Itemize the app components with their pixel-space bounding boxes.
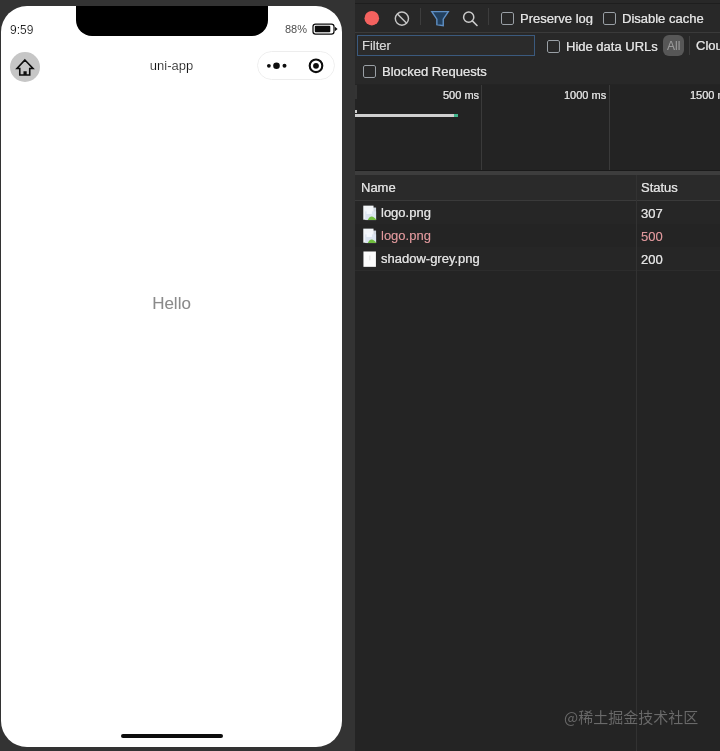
staticText: 1000 ms	[564, 89, 607, 101]
staticText: 9:59	[10, 23, 34, 36]
staticText: Clou	[696, 38, 720, 53]
staticText: logo.png	[381, 228, 431, 243]
button[interactable]: Filter	[425, 6, 452, 31]
staticText: shadow-grey.png	[381, 251, 480, 266]
button[interactable]: logo.png	[355, 201, 720, 224]
staticText: Disable cache	[622, 11, 704, 25]
staticText: 88%	[285, 23, 308, 35]
button[interactable]: Filter	[357, 35, 535, 56]
staticText: Hello	[1, 294, 342, 313]
button[interactable]: Menu	[257, 51, 335, 80]
button[interactable]: Hide data URLs	[547, 39, 658, 53]
button[interactable]: Home	[10, 52, 40, 82]
staticText: All	[667, 39, 681, 52]
staticText: Preserve log	[520, 11, 593, 25]
button[interactable]: Blocked Requests	[363, 64, 487, 78]
button[interactable]: shadow-grey.png	[355, 247, 720, 270]
staticText: 500 ms	[443, 89, 480, 101]
staticText: Status	[641, 180, 678, 195]
button[interactable]: All	[663, 35, 684, 56]
button[interactable]: Disable cache	[603, 11, 704, 25]
staticText: Hide data URLs	[566, 39, 658, 53]
staticText: Filter	[362, 38, 391, 53]
button[interactable]: Clear	[389, 6, 416, 31]
staticText: 1500 m	[690, 89, 720, 101]
button[interactable]: Record network log	[359, 6, 386, 31]
staticText: 500	[641, 229, 663, 244]
staticText: @稀土掘金技术社区	[564, 706, 699, 728]
staticText: 200	[641, 252, 663, 267]
staticText: Blocked Requests	[382, 64, 487, 78]
staticText: Name	[361, 180, 396, 195]
staticText: logo.png	[381, 205, 431, 220]
staticText: 307	[641, 206, 663, 221]
button[interactable]: Search	[455, 6, 482, 31]
button[interactable]: Preserve log	[501, 11, 593, 25]
staticText: uni-app	[1, 58, 342, 73]
button[interactable]: logo.png	[355, 224, 720, 247]
